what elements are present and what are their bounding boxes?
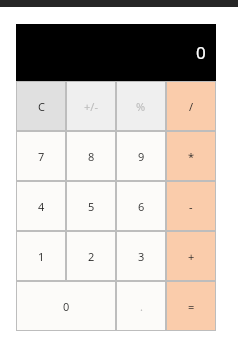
button[interactable]: * — [166, 131, 216, 181]
button[interactable]: 8 — [66, 131, 116, 181]
staticText: +/- — [84, 99, 98, 114]
staticText: 2 — [88, 249, 95, 264]
staticText: 3 — [138, 249, 145, 264]
button[interactable]: 5 — [66, 181, 116, 231]
staticText: 0 — [196, 41, 206, 64]
button[interactable]: 1 — [16, 231, 66, 281]
staticText: 9 — [138, 149, 145, 164]
staticText: C — [38, 99, 45, 114]
button[interactable]: 9 — [116, 131, 166, 181]
staticText: 7 — [38, 149, 45, 164]
button[interactable]: 4 — [16, 181, 66, 231]
button[interactable]: 3 — [116, 231, 166, 281]
staticText: 6 — [138, 199, 145, 214]
button[interactable]: - — [166, 181, 216, 231]
staticText: / — [189, 99, 194, 114]
staticText: 4 — [38, 199, 45, 214]
button[interactable]: 6 — [116, 181, 166, 231]
staticText: . — [140, 299, 143, 314]
button[interactable]: +/- — [66, 81, 116, 131]
staticText: + — [188, 249, 195, 264]
staticText: 5 — [88, 199, 95, 214]
button[interactable]: 0 — [16, 281, 116, 331]
button[interactable]: 2 — [66, 231, 116, 281]
staticText: = — [188, 299, 195, 314]
staticText: % — [136, 99, 146, 114]
staticText: * — [188, 149, 195, 164]
staticText: 0 — [63, 299, 70, 314]
button[interactable]: 7 — [16, 131, 66, 181]
staticText: - — [189, 199, 193, 214]
staticText: 1 — [38, 249, 45, 264]
button[interactable]: % — [116, 81, 166, 131]
button[interactable]: + — [166, 231, 216, 281]
button[interactable]: = — [166, 281, 216, 331]
button[interactable]: C — [16, 81, 66, 131]
button[interactable]: / — [166, 81, 216, 131]
button[interactable]: . — [116, 281, 166, 331]
staticText: 8 — [88, 149, 95, 164]
